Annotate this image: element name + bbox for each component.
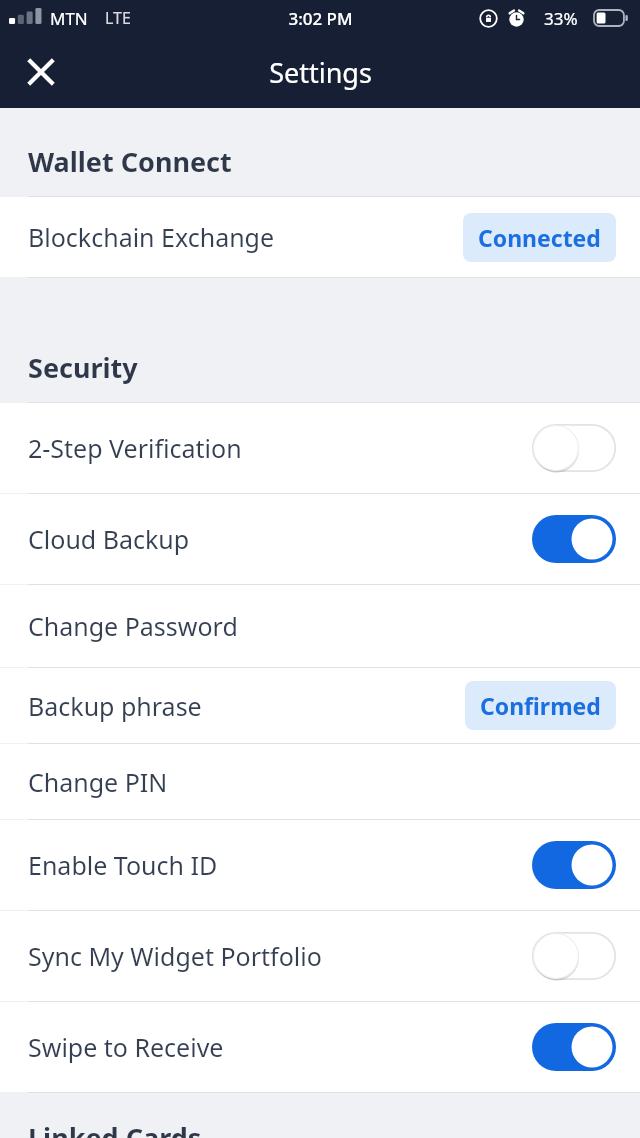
- staticText: 3:02 PM: [288, 7, 353, 30]
- staticText: MTN: [50, 7, 88, 30]
- staticText: Sync My Widget Portfolio: [28, 939, 532, 973]
- staticText: Swipe to Receive: [28, 1030, 532, 1064]
- staticText: Enable Touch ID: [28, 848, 532, 882]
- staticText: Wallet Connect: [28, 143, 232, 180]
- button[interactable]: Cloud Backup: [0, 494, 640, 584]
- staticText: 2-Step Verification: [28, 431, 532, 465]
- button[interactable]: Close: [10, 41, 72, 103]
- button[interactable]: Sync My Widget Portfolio: [0, 911, 640, 1001]
- button[interactable]: Connected: [463, 213, 616, 262]
- button[interactable]: Toggle on: [532, 1023, 616, 1071]
- staticText: Change Password: [28, 609, 616, 643]
- button[interactable]: Change Password: [0, 585, 640, 667]
- staticText: Settings: [269, 54, 372, 91]
- button[interactable]: Enable Touch ID: [0, 820, 640, 910]
- button[interactable]: Change PIN: [0, 744, 640, 819]
- button[interactable]: Blockchain Exchange: [0, 197, 640, 277]
- staticText: Confirmed: [480, 690, 601, 721]
- staticText: Cloud Backup: [28, 522, 532, 556]
- staticText: Connected: [478, 222, 601, 253]
- staticText: Backup phrase: [28, 689, 465, 723]
- staticText: LTE: [105, 7, 131, 29]
- button[interactable]: Toggle off: [532, 932, 616, 980]
- staticText: Blockchain Exchange: [28, 220, 463, 254]
- button[interactable]: Toggle on: [532, 515, 616, 563]
- staticText: Security: [28, 349, 138, 386]
- staticText: Change PIN: [28, 765, 616, 799]
- staticText: Linked Cards: [28, 1119, 202, 1138]
- button[interactable]: Swipe to Receive: [0, 1002, 640, 1092]
- button[interactable]: Backup phrase: [0, 668, 640, 743]
- button[interactable]: Toggle off: [532, 424, 616, 472]
- button[interactable]: Toggle on: [532, 841, 616, 889]
- button[interactable]: 2-Step Verification: [0, 403, 640, 493]
- staticText: 33%: [544, 7, 578, 30]
- button[interactable]: Confirmed: [465, 681, 616, 730]
